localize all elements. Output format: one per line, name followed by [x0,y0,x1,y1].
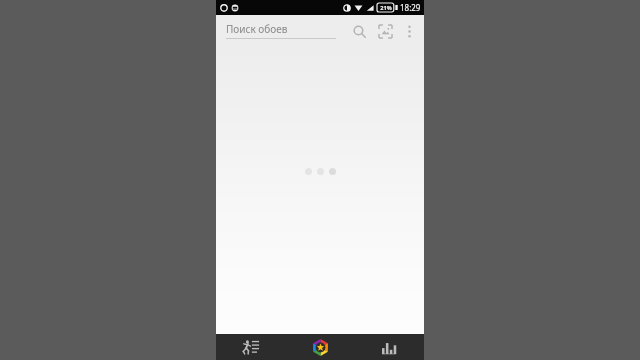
button[interactable]: Image search [372,18,398,44]
button[interactable]: More options [398,20,420,42]
button[interactable]: Поиск обоев [226,15,340,46]
staticText: 21% [380,4,392,11]
button[interactable]: Search [346,18,372,44]
button[interactable]: Statistics [355,334,424,360]
staticText: Поиск обоев [226,22,288,36]
button[interactable]: Activity [216,334,286,360]
staticText: 18:29 [400,2,421,13]
button[interactable]: Home [286,334,355,360]
